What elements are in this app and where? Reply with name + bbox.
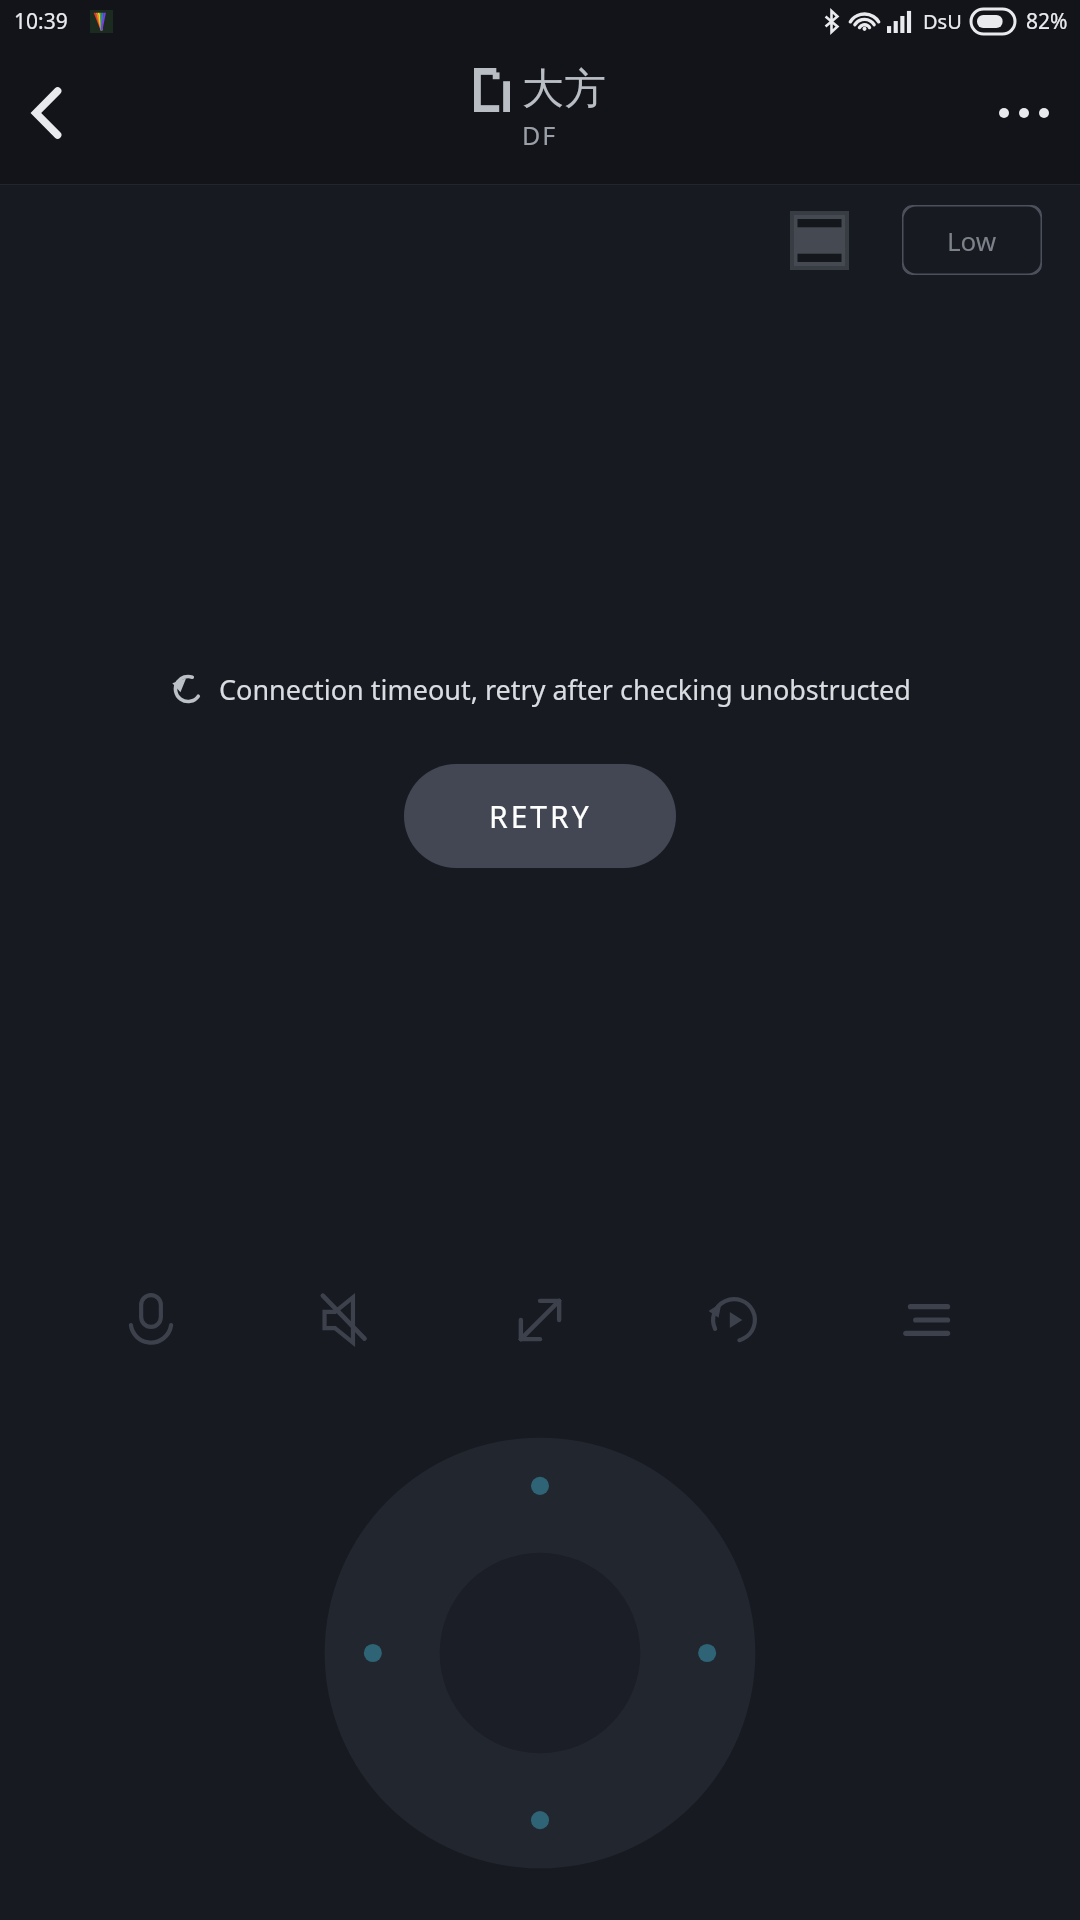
button[interactable]: Back bbox=[8, 74, 86, 152]
button[interactable]: Low bbox=[902, 205, 1042, 275]
button[interactable]: Fullscreen bbox=[497, 1278, 583, 1362]
staticText: 82% bbox=[1026, 7, 1068, 36]
staticText: 10:39 bbox=[14, 7, 68, 36]
button[interactable]: Microphone bbox=[108, 1278, 194, 1362]
staticText: Connection timeout, retry after checking… bbox=[219, 671, 911, 708]
staticText: 大方 bbox=[522, 63, 606, 116]
button[interactable]: Aspect ratio bbox=[784, 205, 854, 275]
staticText: RETRY bbox=[489, 796, 592, 837]
button[interactable]: More options bbox=[984, 73, 1064, 153]
button[interactable]: Direction pad bbox=[266, 1379, 814, 1920]
staticText: DsU bbox=[923, 8, 962, 35]
button[interactable]: RETRY bbox=[404, 764, 676, 868]
button[interactable]: Replay bbox=[691, 1278, 777, 1362]
staticText: DF bbox=[522, 118, 558, 152]
button[interactable]: Mute bbox=[303, 1278, 389, 1362]
button[interactable]: Menu bbox=[886, 1278, 972, 1362]
staticText: Low bbox=[947, 223, 997, 258]
